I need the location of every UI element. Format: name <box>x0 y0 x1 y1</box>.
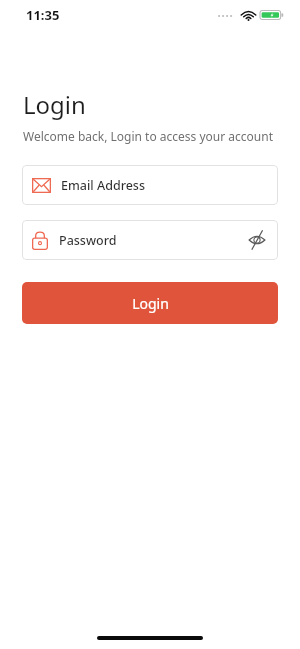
button[interactable]: Password <box>22 220 278 260</box>
staticText: Email Address <box>61 177 146 194</box>
button[interactable]: Show password <box>246 229 268 251</box>
button[interactable]: Email Address <box>22 165 278 205</box>
button[interactable]: Login <box>22 282 278 324</box>
staticText: Password <box>59 232 117 249</box>
staticText: 11:35 <box>26 6 60 24</box>
staticText: Login <box>132 294 169 313</box>
staticText: Welcome back, Login to access your accou… <box>23 128 273 144</box>
staticText: Login <box>23 88 86 121</box>
